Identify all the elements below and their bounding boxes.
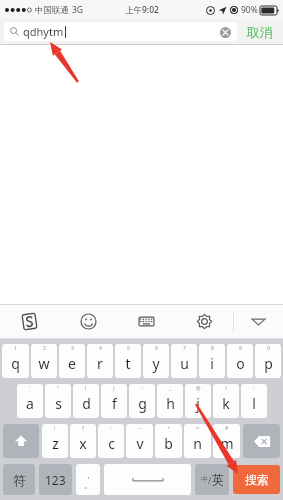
button[interactable]: Clear text (218, 25, 232, 39)
staticText: 6 (155, 345, 158, 352)
staticText: 符 (13, 472, 26, 488)
button[interactable]: ? (70, 424, 96, 458)
button[interactable]: Chinese English toggle (195, 464, 229, 495)
staticText: qdhytm (23, 24, 64, 39)
staticText: - (141, 385, 143, 392)
staticText: 。 (84, 480, 92, 490)
button[interactable]: qdhytm (4, 22, 237, 41)
staticText: k (222, 394, 230, 413)
staticText: y (152, 354, 160, 373)
button[interactable]: 2 (31, 344, 57, 378)
button[interactable]: 1 (2, 344, 29, 378)
button[interactable]: ; (98, 424, 124, 458)
staticText: n (193, 434, 202, 453)
staticText: t (125, 354, 131, 373)
staticText: " (57, 385, 60, 392)
button[interactable]: Space (104, 464, 191, 495)
staticText: w (38, 354, 50, 373)
staticText: ) (113, 385, 115, 392)
button[interactable]: Settings (175, 305, 233, 338)
staticText: ! (54, 425, 56, 432)
staticText: ( (85, 385, 87, 392)
staticText: 0 (267, 345, 270, 352)
staticText: h (166, 394, 175, 413)
staticText: z (52, 434, 59, 453)
staticText: 9 (239, 345, 242, 352)
staticText: m (220, 434, 234, 453)
button[interactable]: Emoji (59, 305, 117, 338)
button[interactable]: Backspace (243, 424, 280, 458)
staticText: c (108, 434, 115, 453)
button[interactable]: ! (42, 424, 68, 458)
staticText: g (138, 394, 147, 413)
staticText: 中 (201, 475, 208, 484)
staticText: 1 (14, 345, 17, 352)
button[interactable]: 5 (115, 344, 141, 378)
staticText: v (136, 434, 144, 453)
staticText: 取消 (247, 24, 273, 40)
staticText: ? (82, 425, 85, 432)
button[interactable]: _ (157, 384, 183, 418)
button[interactable]: 3 (59, 344, 85, 378)
button[interactable]: Symbols (3, 464, 35, 495)
staticText: i (210, 354, 214, 373)
staticText: : (253, 385, 255, 392)
staticText: @ (196, 385, 201, 392)
button[interactable]: Search (233, 465, 280, 494)
button[interactable]: 9 (227, 344, 253, 378)
staticText: u (180, 354, 189, 373)
button[interactable]: ) (101, 384, 127, 418)
staticText: 3G (72, 4, 84, 16)
staticText: / (225, 385, 227, 392)
staticText: 4 (99, 345, 102, 352)
staticText: ， (84, 470, 92, 480)
staticText: x (79, 434, 87, 453)
button[interactable]: 0 (255, 344, 281, 378)
staticText: 2 (43, 345, 46, 352)
button[interactable]: 6 (143, 344, 169, 378)
staticText: = (196, 425, 199, 432)
staticText: r (97, 354, 103, 373)
button[interactable]: Hide keyboard (234, 305, 283, 338)
staticText: 中国联通 (35, 5, 69, 16)
staticText: f (112, 394, 117, 413)
staticText: ~ (138, 425, 141, 432)
staticText: l (252, 394, 256, 413)
staticText: + (167, 425, 170, 432)
button[interactable]: ( (73, 384, 99, 418)
button[interactable]: Keyboard layout (117, 305, 175, 338)
staticText: d (82, 394, 91, 413)
button[interactable]: 7 (171, 344, 197, 378)
staticText: / (208, 474, 212, 486)
button[interactable]: Numbers (39, 464, 72, 495)
staticText: 123 (45, 472, 66, 488)
staticText: 搜索 (245, 472, 269, 487)
button[interactable]: / (213, 384, 239, 418)
button[interactable]: Punctuation (76, 464, 100, 495)
button[interactable]: = (184, 424, 211, 458)
button[interactable]: - (129, 384, 155, 418)
button[interactable]: + (155, 424, 182, 458)
staticText: o (236, 354, 245, 373)
button[interactable]: 取消 (237, 19, 283, 44)
button[interactable]: 4 (87, 344, 113, 378)
button[interactable]: @ (185, 384, 211, 418)
staticText: a (26, 394, 34, 413)
button[interactable]: # (213, 424, 240, 458)
button[interactable]: : (241, 384, 267, 418)
staticText: ; (110, 425, 112, 432)
staticText: j (196, 394, 200, 413)
staticText: b (164, 434, 173, 453)
button[interactable]: Shift (3, 424, 39, 458)
button[interactable]: Sogou input (0, 305, 59, 338)
button[interactable]: ' (17, 384, 43, 418)
staticText: 上午9:02 (125, 4, 159, 16)
button[interactable]: " (45, 384, 71, 418)
staticText: s (55, 394, 62, 413)
staticText: 3 (71, 345, 74, 352)
staticText: 90% (241, 4, 258, 16)
button[interactable]: 8 (199, 344, 225, 378)
staticText: # (225, 425, 229, 432)
button[interactable]: ~ (126, 424, 153, 458)
staticText: 8 (211, 345, 214, 352)
